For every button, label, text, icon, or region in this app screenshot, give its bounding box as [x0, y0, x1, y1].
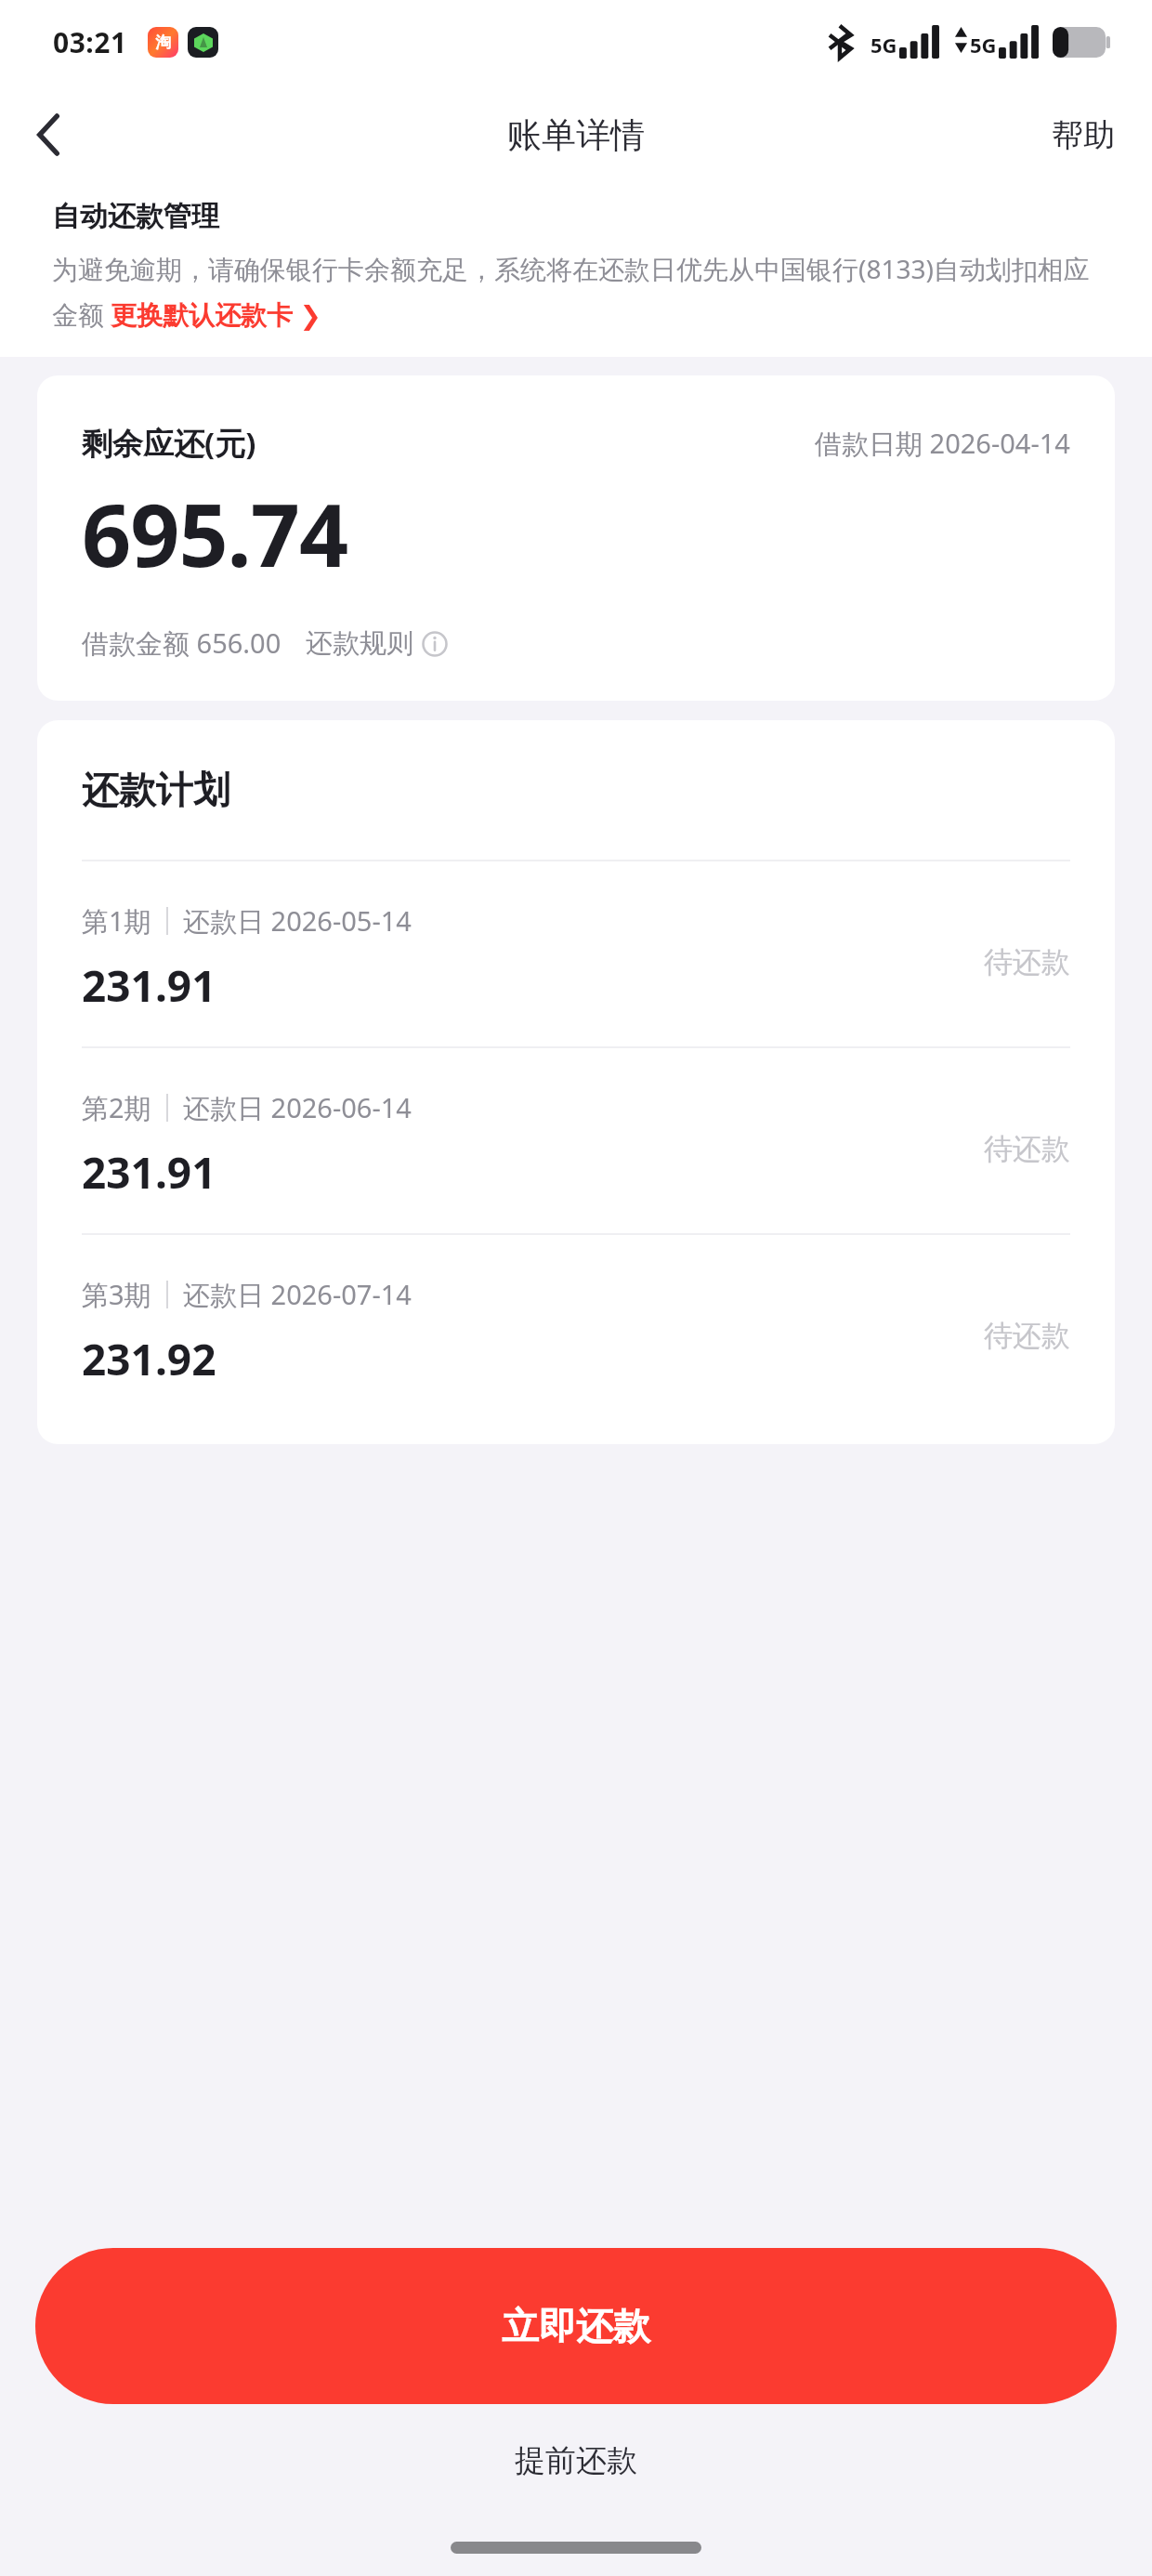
staticText: 淘: [155, 33, 171, 52]
staticText: 帮助: [1052, 115, 1115, 155]
staticText: 还款日 2026-07-14: [183, 1276, 412, 1313]
button[interactable]: 第1期: [82, 861, 1070, 1046]
staticText: 还款规则: [306, 626, 413, 661]
staticText: 账单详情: [507, 113, 645, 157]
staticText: 5G: [871, 31, 897, 59]
staticText: 还款日 2026-06-14: [183, 1089, 412, 1126]
button[interactable]: 立即还款: [35, 2248, 1117, 2404]
staticText: 695.74: [82, 475, 348, 593]
staticText: 03:21: [53, 23, 127, 61]
button[interactable]: 第3期: [82, 1235, 1070, 1420]
staticText: 第2期: [82, 1089, 151, 1126]
staticText: 还款计划: [82, 767, 230, 813]
staticText: 231.91: [82, 1143, 216, 1202]
staticText: 第1期: [82, 902, 151, 940]
staticText: 还款日 2026-05-14: [183, 902, 412, 940]
button[interactable]: 帮助: [1015, 97, 1152, 174]
staticText: 待还款: [984, 1318, 1070, 1354]
staticText: 借款金额 656.00: [82, 624, 281, 662]
staticText: 231.91: [82, 956, 216, 1015]
staticText: 借款日期 2026-04-14: [815, 425, 1070, 462]
button[interactable]: 返回: [7, 94, 89, 176]
button[interactable]: 提前还款: [459, 2421, 693, 2501]
staticText: 提前还款: [515, 2441, 637, 2480]
staticText: 剩余应还(元): [82, 422, 256, 464]
staticText: 自动还款管理: [52, 199, 219, 234]
button[interactable]: 剩余应还(元): [37, 375, 1115, 701]
staticText: 第3期: [82, 1276, 151, 1313]
button[interactable]: 还款规则: [306, 626, 448, 661]
staticText: 231.92: [82, 1330, 216, 1388]
staticText: 待还款: [984, 944, 1070, 980]
staticText: 待还款: [984, 1131, 1070, 1167]
staticText: 立即还款: [502, 2303, 650, 2349]
button[interactable]: 为避免逾期，请确保银行卡余额充足，系统将在还款日优先从中国银行(8133)自动划…: [52, 251, 1107, 333]
button[interactable]: 第2期: [82, 1048, 1070, 1233]
staticText: 5G: [970, 31, 997, 59]
